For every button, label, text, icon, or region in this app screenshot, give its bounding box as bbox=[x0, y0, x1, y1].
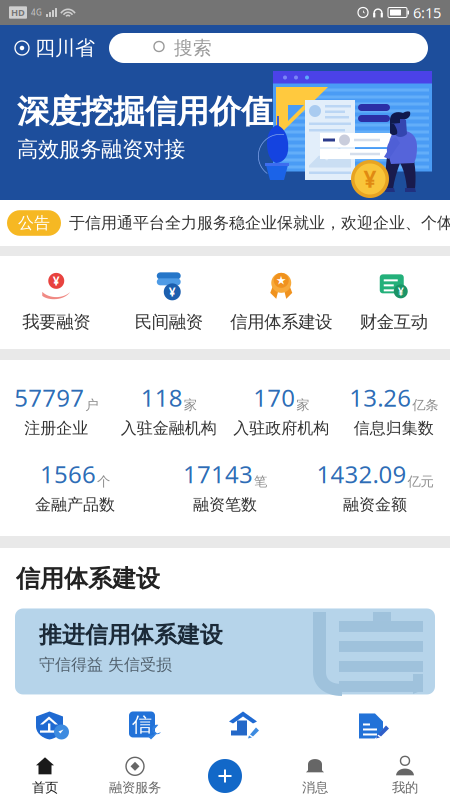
staticText: 公告 bbox=[18, 213, 50, 233]
button[interactable]: 发布 bbox=[180, 759, 270, 793]
button[interactable]: 人才服务 bbox=[229, 711, 262, 741]
staticText: 推进信用体系建设 bbox=[39, 621, 223, 649]
staticText: 入驻政府机构 bbox=[233, 418, 329, 438]
staticText: 信用体系建设 bbox=[16, 564, 160, 593]
staticText: 于信用通平台全力服务稳企业保就业，欢迎企业、个体工 bbox=[69, 213, 450, 233]
staticText: 118 bbox=[141, 381, 183, 413]
staticText: 1566 bbox=[40, 458, 96, 490]
staticText: 入驻金融机构 bbox=[121, 418, 217, 438]
staticText: 首页 bbox=[32, 779, 58, 796]
staticText: 搜索 bbox=[174, 36, 212, 59]
button[interactable]: 消息 bbox=[270, 756, 360, 796]
button[interactable]: 企业信用 bbox=[36, 711, 69, 741]
staticText: 注册企业 bbox=[24, 418, 88, 438]
staticText: 亿条 bbox=[412, 397, 438, 413]
staticText: 深度挖掘信用价值 bbox=[17, 92, 273, 131]
staticText: 信用体系建设 bbox=[230, 311, 332, 333]
staticText: ★ bbox=[276, 273, 287, 287]
staticText: 户 bbox=[85, 397, 98, 413]
staticText: ¥ bbox=[169, 284, 176, 300]
button[interactable]: 推进信用体系建设 bbox=[15, 608, 435, 694]
button[interactable]: 信用修复 bbox=[129, 711, 162, 741]
staticText: 家 bbox=[184, 397, 197, 413]
button[interactable]: ¥ bbox=[0, 272, 112, 333]
button[interactable]: ★ bbox=[225, 272, 337, 333]
staticText: HD bbox=[11, 6, 25, 19]
button[interactable]: 四川省 bbox=[0, 33, 109, 63]
staticText: 笔 bbox=[254, 473, 267, 490]
staticText: 4G bbox=[31, 7, 42, 18]
staticText: 财金互动 bbox=[360, 311, 428, 333]
button[interactable]: ¥ bbox=[112, 272, 225, 333]
staticText: ¥ bbox=[363, 164, 376, 194]
staticText: ¥ bbox=[398, 284, 404, 298]
button[interactable]: 首页 bbox=[0, 756, 90, 796]
staticText: 信 bbox=[132, 712, 152, 737]
staticText: ¥ bbox=[53, 273, 60, 289]
button[interactable]: 搜索 bbox=[109, 33, 428, 63]
staticText: 融资金额 bbox=[343, 495, 407, 515]
staticText: 170 bbox=[253, 381, 295, 413]
staticText: 57797 bbox=[14, 381, 84, 413]
staticText: 消息 bbox=[302, 779, 328, 796]
staticText: 融资服务 bbox=[109, 779, 161, 796]
staticText: 6:15 bbox=[413, 3, 441, 22]
staticText: 1432.09 bbox=[316, 458, 406, 490]
staticText: 高效服务融资对接 bbox=[17, 136, 185, 162]
button[interactable]: 我的 bbox=[360, 756, 450, 796]
button[interactable]: ¥ bbox=[337, 272, 450, 333]
staticText: 守信得益 失信受损 bbox=[39, 655, 172, 674]
staticText: 四川省 bbox=[35, 36, 95, 60]
staticText: 信息归集数 bbox=[354, 418, 434, 438]
button[interactable]: 融资服务 bbox=[90, 756, 180, 796]
staticText: 个 bbox=[97, 473, 110, 490]
staticText: 民间融资 bbox=[135, 311, 203, 333]
staticText: 13.26 bbox=[349, 381, 411, 413]
button[interactable]: 信用报告 bbox=[359, 711, 392, 741]
staticText: 亿元 bbox=[407, 473, 433, 490]
staticText: 家 bbox=[296, 397, 309, 413]
staticText: 融资笔数 bbox=[193, 495, 257, 515]
staticText: 17143 bbox=[183, 458, 253, 490]
staticText: 我要融资 bbox=[22, 311, 90, 333]
staticText: 我的 bbox=[392, 779, 418, 796]
staticText: 金融产品数 bbox=[35, 495, 115, 515]
